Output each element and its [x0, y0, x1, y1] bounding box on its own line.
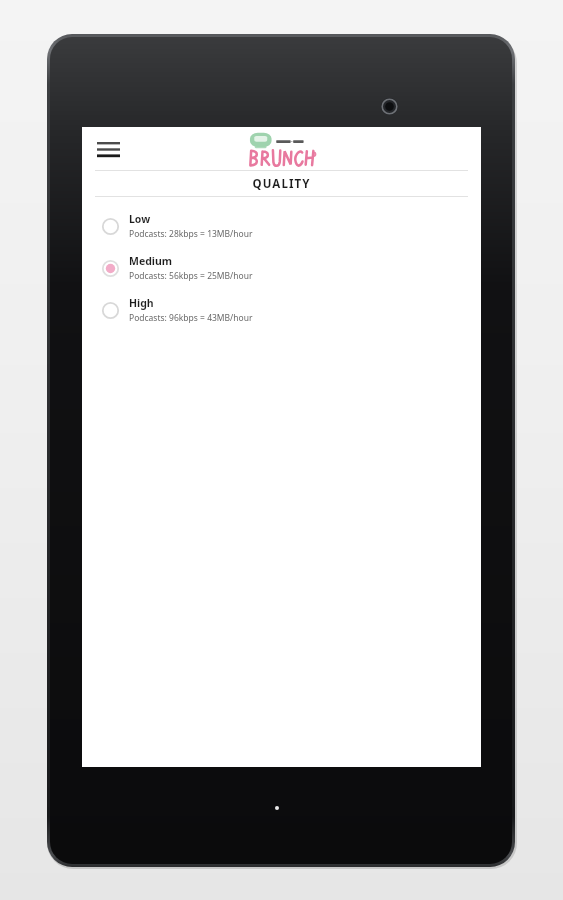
staticText: Podcasts: 96kbps = 43MB/hour — [129, 312, 253, 324]
staticText: Low — [129, 212, 151, 226]
staticText: High — [129, 296, 154, 310]
button[interactable]: Open navigation menu — [90, 135, 126, 163]
button[interactable]: Brunch logo — [246, 132, 318, 168]
button[interactable]: Medium — [82, 247, 481, 289]
button[interactable]: High — [82, 289, 481, 331]
staticText: Podcasts: 28kbps = 13MB/hour — [129, 228, 253, 240]
staticText: Medium — [129, 254, 173, 268]
staticText: QUALITY — [252, 176, 311, 192]
staticText: Podcasts: 56kbps = 25MB/hour — [129, 270, 253, 282]
button[interactable]: Low — [82, 205, 481, 247]
